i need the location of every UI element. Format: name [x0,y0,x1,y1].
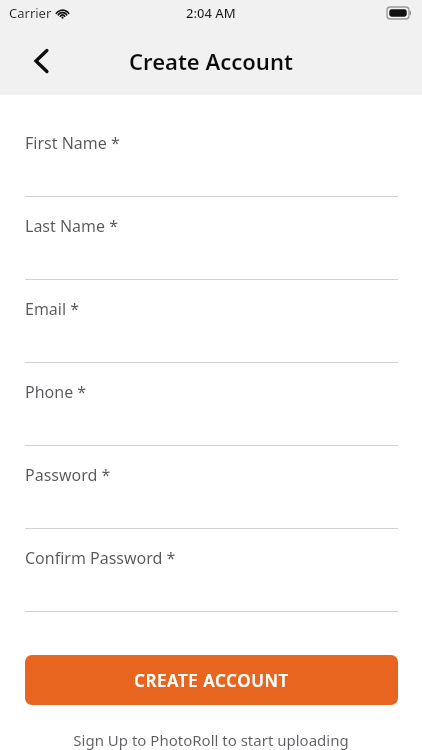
staticText: CREATE ACCOUNT [134,669,289,692]
button[interactable]: Email * [0,280,422,363]
button[interactable]: Phone * [0,363,422,446]
staticText: Confirm Password * [25,547,176,569]
staticText: Create Account [129,46,293,76]
staticText: First Name * [25,132,120,154]
staticText: 2:04 AM [186,4,236,22]
button[interactable]: Password * [0,446,422,529]
staticText: Email * [25,298,80,320]
button[interactable]: First Name * [0,114,422,197]
staticText: Phone * [25,381,87,403]
staticText: Password * [25,464,111,486]
button[interactable]: Confirm Password * [0,529,422,612]
button[interactable]: Back [22,42,60,80]
staticText: Last Name * [25,215,119,237]
button[interactable]: Last Name * [0,197,422,280]
staticText: Carrier [9,4,52,22]
staticText: Sign Up to PhotoRoll to start uploading … [56,730,366,750]
button[interactable]: CREATE ACCOUNT [25,655,398,705]
